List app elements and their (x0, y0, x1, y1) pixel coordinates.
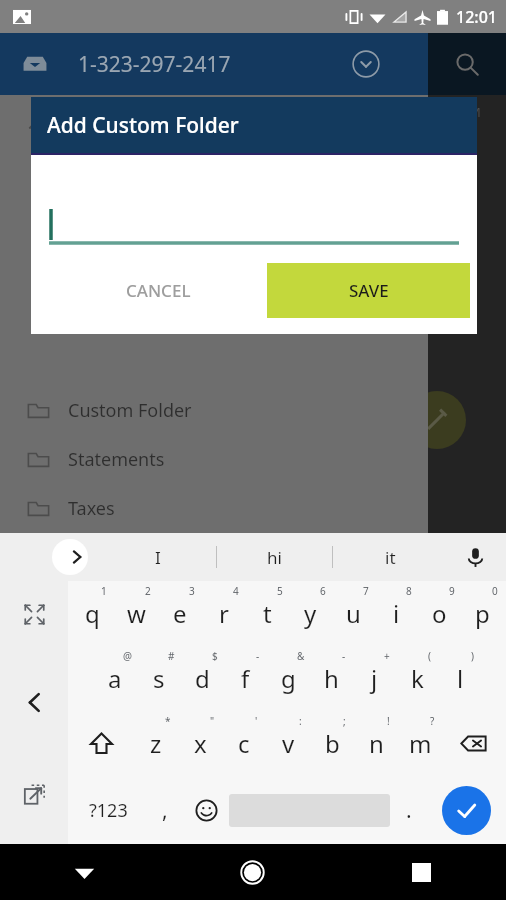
button[interactable]: l (439, 646, 482, 711)
button[interactable]: u (332, 581, 375, 646)
button[interactable]: w (114, 581, 158, 646)
staticText: 2 (145, 584, 151, 598)
staticText: s (153, 662, 165, 695)
staticText: ' (255, 714, 258, 728)
button[interactable]: r (202, 581, 246, 646)
button[interactable]: i (375, 581, 418, 646)
button[interactable]: b (310, 711, 354, 776)
button[interactable]: t (246, 581, 289, 646)
staticText: " (210, 714, 215, 728)
staticText: h (324, 662, 339, 695)
button[interactable]: a (93, 646, 137, 711)
staticText: 7:51 PM (432, 103, 481, 121)
button[interactable]: z (133, 711, 178, 776)
staticText: t (263, 597, 272, 630)
staticText: ; (343, 714, 346, 728)
staticText: I (155, 546, 161, 569)
staticText: 3 (189, 584, 195, 598)
button[interactable]: Shift (70, 711, 133, 776)
button[interactable]: p (461, 581, 504, 646)
button[interactable]: Compose Fax (0, 95, 428, 144)
staticText: 8 (406, 584, 412, 598)
staticText: ! (387, 714, 390, 728)
staticText: ( (428, 649, 431, 663)
button[interactable]: Backspace (442, 711, 504, 776)
button[interactable]: CANCEL (49, 263, 267, 318)
staticText: u (346, 597, 361, 630)
button[interactable]: Floating keyboard (11, 771, 57, 817)
button[interactable]: j (353, 646, 396, 711)
staticText: w (127, 597, 146, 630)
button[interactable]: g (267, 646, 310, 711)
button[interactable]: Expand (346, 44, 386, 84)
staticText: y (304, 597, 317, 630)
button[interactable]: Search (445, 42, 489, 86)
button[interactable]: Resize keyboard (11, 591, 57, 637)
button[interactable]: Emoji (184, 776, 229, 844)
button[interactable]: Enter (442, 786, 491, 835)
staticText: CANCEL (126, 279, 191, 302)
staticText: f (241, 662, 250, 695)
button[interactable]: . (390, 776, 428, 844)
button[interactable]: y (289, 581, 332, 646)
staticText: + (384, 649, 390, 663)
button[interactable]: ?123 (70, 776, 146, 844)
staticText: r (219, 597, 229, 630)
staticText: : (299, 714, 302, 728)
staticText: 0 (492, 584, 498, 598)
button[interactable] (49, 201, 459, 245)
button[interactable]: Home (168, 844, 337, 900)
staticText: j (371, 662, 378, 695)
staticText: q (85, 597, 100, 630)
button[interactable]: Statements (0, 435, 428, 484)
button[interactable]: v (266, 711, 310, 776)
staticText: ?123 (89, 798, 128, 823)
staticText: Taxes (68, 496, 115, 521)
button[interactable]: e (158, 581, 202, 646)
staticText: 5 (277, 584, 283, 598)
button[interactable]: q (70, 581, 114, 646)
button[interactable]: c (222, 711, 266, 776)
button[interactable]: d (181, 646, 224, 711)
staticText: * (165, 714, 171, 728)
button[interactable]: f (224, 646, 267, 711)
button[interactable]: More suggestions (52, 539, 88, 575)
button[interactable]: , (146, 776, 184, 844)
staticText: e (173, 597, 187, 630)
button[interactable]: n (354, 711, 398, 776)
staticText: Compose Fax (68, 107, 182, 132)
staticText: 12:01 (456, 6, 497, 28)
staticText: k (411, 662, 424, 695)
button[interactable]: SAVE (267, 263, 470, 318)
staticText: , (162, 796, 168, 825)
button[interactable]: o (418, 581, 461, 646)
button[interactable]: Compose fax (408, 391, 466, 449)
button[interactable]: m (398, 711, 442, 776)
staticText: 1 page (432, 137, 474, 155)
staticText: - (256, 649, 260, 663)
button[interactable]: s (137, 646, 181, 711)
staticText: @ (123, 649, 132, 663)
button[interactable]: Taxes (0, 484, 428, 533)
button[interactable]: hi (217, 533, 332, 581)
button[interactable]: I (100, 533, 216, 581)
staticText: 6 (320, 584, 326, 598)
button[interactable]: k (396, 646, 439, 711)
button[interactable]: h (310, 646, 353, 711)
staticText: p (475, 597, 490, 630)
staticText: i (393, 597, 400, 630)
button[interactable]: Custom Folder (0, 386, 428, 435)
button[interactable]: Recent apps (337, 844, 506, 900)
staticText: $ (212, 649, 218, 663)
staticText: ) (471, 649, 474, 663)
button[interactable]: it (333, 533, 448, 581)
button[interactable]: x (178, 711, 222, 776)
staticText: 7 (363, 584, 369, 598)
staticText: v (282, 727, 295, 760)
button[interactable]: Back (0, 844, 168, 900)
button[interactable]: Voice input (448, 533, 502, 581)
staticText: d (195, 662, 210, 695)
button[interactable]: Back (11, 679, 57, 725)
staticText: # (168, 649, 175, 663)
